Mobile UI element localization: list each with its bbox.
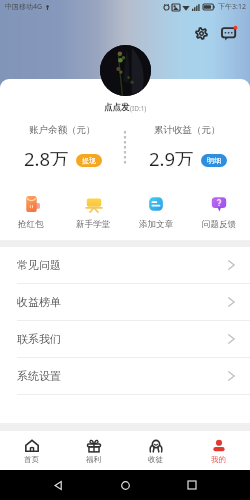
button[interactable]: 问题反馈 [187,194,250,230]
button[interactable]: 我的 [187,431,250,470]
button[interactable]: 提现 [76,154,102,167]
staticText: 点点发 [104,102,130,113]
button[interactable]: 添加文章 [124,194,187,230]
staticText: 2.9万 [149,146,194,166]
staticText: 系统设置 [17,369,61,383]
button[interactable]: 新手学堂 [62,194,124,230]
staticText: 添加文章 [139,219,173,230]
staticText: 下午3:12 [218,2,246,12]
button[interactable]: 收益榜单 [0,284,250,320]
button[interactable]: 抢红包 [0,194,62,230]
button[interactable]: 明细 [201,154,227,167]
button[interactable]: 收徒 [124,431,187,470]
staticText: 2.8万 [24,146,69,166]
staticText: 账户余额（元） [29,124,96,136]
staticText: 累计收益（元） [154,124,221,136]
staticText: 明细 [207,156,221,165]
button[interactable]: 系统设置 [0,358,250,394]
staticText: 收徒 [148,455,163,464]
staticText: 福利 [86,455,101,464]
button[interactable]: Messages [220,24,238,42]
staticText: (ID:1) [130,104,147,113]
button[interactable]: 福利 [62,431,124,470]
staticText: 常见问题 [17,258,61,272]
staticText: 首页 [24,455,39,464]
staticText: 我的 [211,455,226,464]
staticText: 抢红包 [18,219,44,230]
button[interactable]: Profile photo [100,45,151,96]
button[interactable]: 联系我们 [0,321,250,357]
button[interactable]: Settings [193,25,209,41]
staticText: 联系我们 [17,332,61,346]
staticText: 中国移动4G [5,2,43,12]
staticText: 提现 [82,156,96,165]
button[interactable]: 常见问题 [0,247,250,283]
staticText: 新手学堂 [76,219,110,230]
staticText: 问题反馈 [202,219,236,230]
button[interactable]: 首页 [0,431,62,470]
staticText: 收益榜单 [17,295,61,309]
